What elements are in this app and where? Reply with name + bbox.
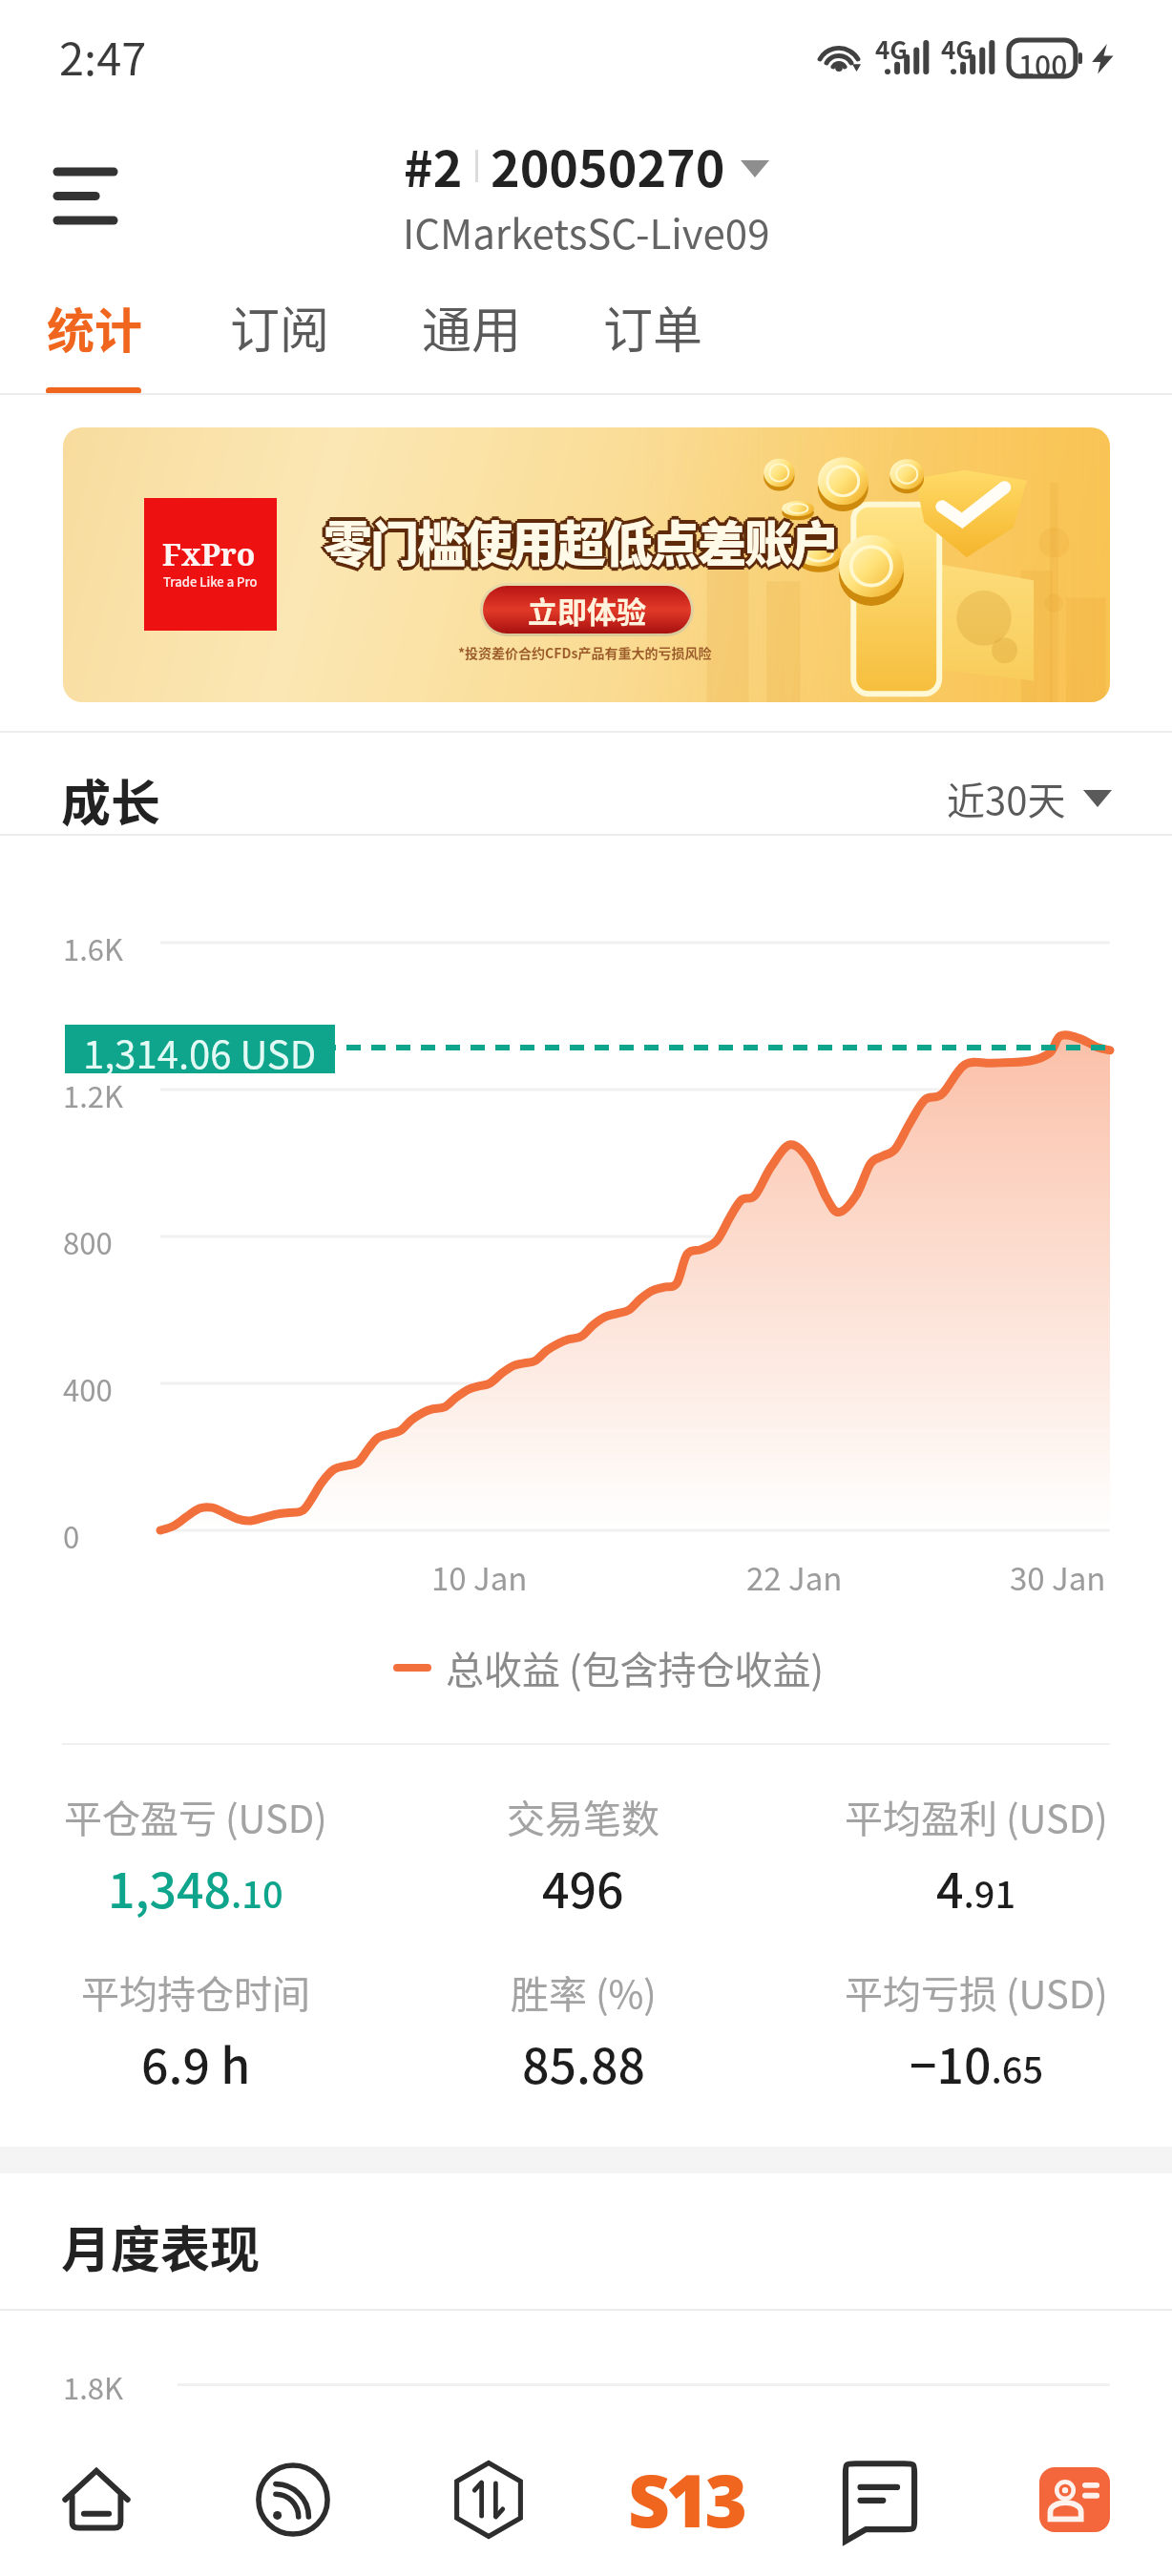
staticText: 零门槛使用超低点差账户	[322, 504, 837, 574]
button[interactable]: FxPro	[63, 427, 1110, 702]
staticText: #2	[404, 130, 463, 201]
staticText: 月度表现	[61, 2211, 261, 2282]
staticText: 零门槛使用超低点差账户	[322, 506, 837, 576]
staticText: 1.2K	[63, 1073, 124, 1116]
staticText: 统计	[47, 293, 142, 362]
staticText: 平均持仓时间	[81, 1964, 310, 2020]
button[interactable]: 订单	[561, 277, 744, 393]
staticText: 6.9 h	[141, 2028, 251, 2097]
staticText: 零门槛使用超低点差账户	[325, 506, 841, 576]
staticText: 1.8K	[63, 2365, 124, 2408]
staticText: 1,314.06 USD	[83, 1025, 317, 1073]
staticText: 近30天	[947, 771, 1066, 826]
staticText: 496	[542, 1853, 624, 1922]
staticText: 85.88	[522, 2028, 645, 2097]
button[interactable]: 立即体验	[480, 583, 694, 636]
staticText: 零门槛使用超低点差账户	[322, 508, 837, 578]
button[interactable]: Home	[10, 2423, 182, 2576]
button[interactable]: #2	[0, 130, 1172, 260]
button[interactable]: 订阅	[188, 277, 371, 393]
button[interactable]: 近30天	[947, 771, 1112, 826]
staticText: 成长	[61, 764, 161, 836]
button[interactable]: S13	[599, 2423, 771, 2576]
staticText: 胜率 (%)	[511, 1964, 657, 2020]
staticText: S13	[628, 2450, 743, 2549]
staticText: Trade Like a Pro	[163, 572, 258, 591]
staticText: 通用	[422, 291, 522, 363]
staticText: 22 Jan	[746, 1554, 843, 1600]
staticText: 订阅	[230, 291, 330, 363]
button[interactable]: Trade	[403, 2423, 575, 2576]
staticText: 零门槛使用超低点差账户	[327, 506, 843, 576]
staticText: 订单	[603, 291, 703, 363]
staticText: 400	[63, 1367, 113, 1410]
staticText: 0	[63, 1514, 80, 1557]
button[interactable]: Menu	[24, 134, 148, 258]
staticText: 100	[1018, 43, 1068, 79]
staticText: 800	[63, 1220, 113, 1263]
staticText: 零门槛使用超低点差账户	[324, 504, 839, 574]
staticText: 零门槛使用超低点差账户	[324, 508, 839, 578]
staticText: 零门槛使用超低点差账户	[325, 508, 841, 578]
staticText: 20050270	[491, 130, 725, 201]
button[interactable]: Profile	[989, 2423, 1161, 2576]
staticText: 1,348.10	[108, 1853, 283, 1922]
staticText: 4.91	[936, 1853, 1016, 1922]
staticText: 总收益 (包含持仓收益)	[446, 1640, 824, 1695]
staticText: 平均亏损 (USD)	[845, 1964, 1108, 2020]
staticText: 交易笔数	[507, 1789, 659, 1844]
staticText: 零门槛使用超低点差账户	[325, 504, 841, 574]
staticText: 零门槛使用超低点差账户	[320, 506, 835, 576]
staticText: 立即体验	[528, 589, 646, 632]
staticText: *投资差价合约CFDs产品有重大的亏损风险	[458, 643, 712, 662]
button[interactable]: Signals	[207, 2423, 379, 2576]
staticText: 平均盈利 (USD)	[845, 1789, 1108, 1844]
button[interactable]: 统计	[5, 277, 188, 393]
staticText: 30 Jan	[1010, 1554, 1106, 1600]
button[interactable]: 通用	[380, 277, 563, 393]
staticText: ICMarketsSC-Live09	[403, 202, 770, 260]
staticText: 10 Jan	[431, 1554, 528, 1600]
staticText: 4G	[941, 31, 973, 67]
button[interactable]: Chat	[794, 2423, 966, 2576]
staticText: 平仓盈亏 (USD)	[64, 1789, 327, 1844]
staticText: FxPro	[162, 533, 256, 575]
staticText: 2:47	[59, 23, 147, 88]
staticText: −10.65	[910, 2028, 1044, 2097]
staticText: 4G	[875, 31, 908, 67]
staticText: 1.6K	[63, 926, 124, 969]
staticText: 零门槛使用超低点差账户	[324, 502, 839, 572]
staticText: 零门槛使用超低点差账户	[324, 506, 839, 576]
staticText: 零门槛使用超低点差账户	[324, 509, 839, 580]
